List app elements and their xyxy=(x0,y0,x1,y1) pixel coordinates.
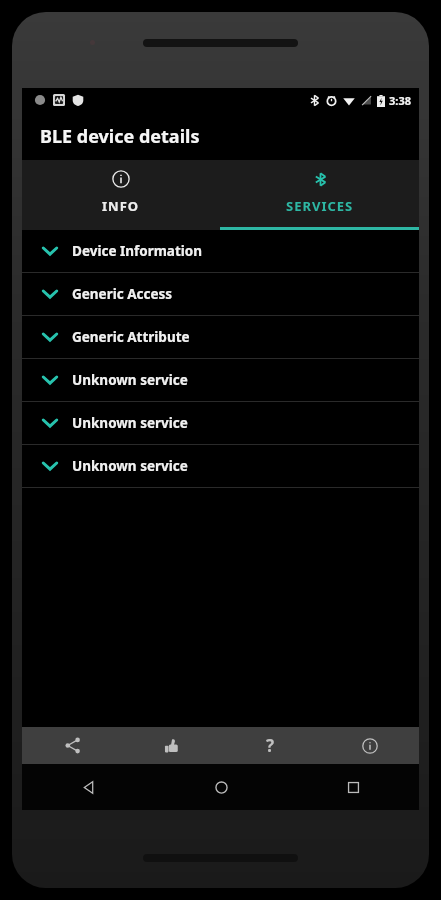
button[interactable]: Like xyxy=(122,727,221,764)
staticText: INFO xyxy=(102,197,140,215)
staticText: Device Information xyxy=(72,242,203,260)
button[interactable]: Unknown service xyxy=(22,359,419,401)
button[interactable]: SERVICES xyxy=(220,160,419,230)
staticText: Unknown service xyxy=(72,414,188,432)
staticText: Generic Access xyxy=(72,285,173,303)
staticText: Unknown service xyxy=(72,371,188,389)
staticText: Unknown service xyxy=(72,457,188,475)
staticText: ? xyxy=(266,734,275,757)
button[interactable]: Help xyxy=(221,727,320,764)
button[interactable]: INFO xyxy=(22,160,220,230)
button[interactable]: Unknown service xyxy=(22,402,419,444)
staticText: BLE device details xyxy=(40,124,200,149)
staticText: Generic Attribute xyxy=(72,328,190,346)
button[interactable]: Generic Access xyxy=(22,273,419,315)
button[interactable]: Device Information xyxy=(22,230,419,272)
button[interactable]: Share xyxy=(22,727,122,764)
staticText: 3:38 xyxy=(389,93,411,108)
button[interactable]: Unknown service xyxy=(22,445,419,487)
staticText: SERVICES xyxy=(286,197,354,215)
button[interactable]: Generic Attribute xyxy=(22,316,419,358)
button[interactable]: Recent apps xyxy=(287,764,419,810)
button[interactable]: Home xyxy=(155,764,287,810)
button[interactable]: Back xyxy=(22,764,155,810)
button[interactable]: Info xyxy=(320,727,419,764)
